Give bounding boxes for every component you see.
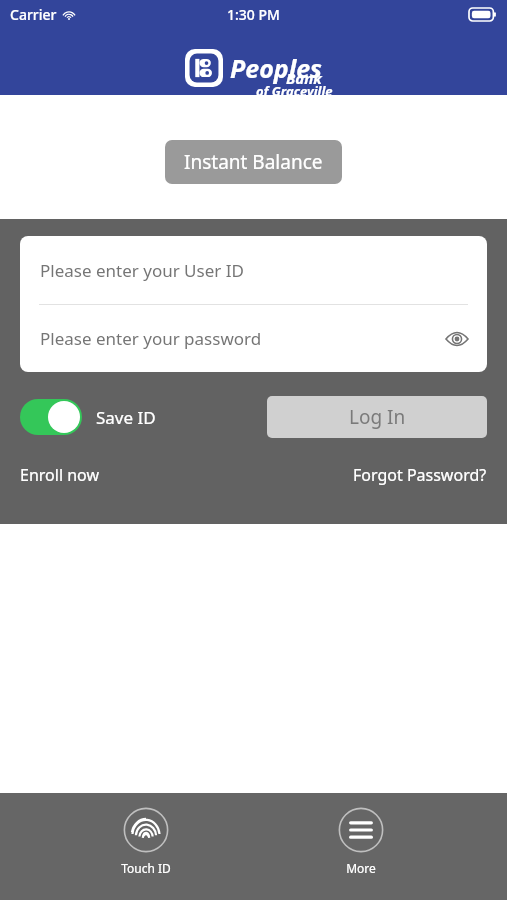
staticText: Please enter your password — [40, 327, 262, 350]
staticText: Instant Balance — [184, 149, 323, 175]
staticText: of Graceville — [256, 82, 333, 100]
button[interactable]: Log In — [267, 396, 487, 438]
staticText: Log In — [349, 404, 406, 430]
other: More — [338, 807, 384, 853]
button[interactable]: Touch ID — [76, 793, 216, 876]
staticText: Peoples — [230, 51, 322, 85]
button[interactable]: Please enter your password — [20, 305, 487, 372]
staticText: Carrier — [10, 5, 57, 24]
staticText: More — [346, 860, 376, 876]
button[interactable]: More — [291, 793, 431, 876]
other: Touch ID — [123, 807, 169, 853]
staticText: Bank — [286, 68, 322, 88]
button[interactable]: Instant Balance — [165, 140, 342, 184]
staticText: Please enter your User ID — [40, 259, 244, 282]
staticText: Touch ID — [121, 860, 171, 876]
staticText: 1:30 PM — [227, 5, 280, 24]
button[interactable]: Show password — [439, 321, 475, 357]
button[interactable]: Please enter your User ID — [20, 236, 487, 304]
button[interactable]: Save ID — [20, 399, 156, 435]
button[interactable]: Enroll now — [20, 464, 99, 486]
staticText: Enroll now — [20, 464, 99, 486]
button[interactable]: Forgot Password? — [353, 464, 487, 486]
staticText: Save ID — [96, 406, 156, 429]
staticText: Forgot Password? — [353, 464, 487, 486]
